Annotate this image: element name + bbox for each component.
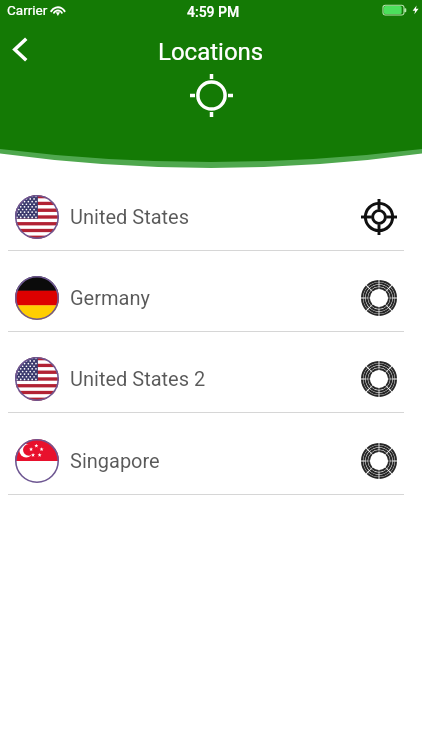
staticText: Germany	[70, 286, 150, 309]
staticText: Locations	[158, 38, 264, 66]
staticText: Carrier	[7, 2, 48, 18]
button[interactable]: Singapore	[0, 414, 422, 495]
button[interactable]: Selected location	[356, 194, 402, 240]
button[interactable]: Germany	[0, 251, 422, 332]
button[interactable]: Connecting	[356, 275, 402, 321]
staticText: United States 2	[70, 367, 206, 390]
staticText: 4:59 PM	[187, 4, 240, 20]
staticText: United States	[70, 205, 190, 228]
button[interactable]: Connecting	[356, 356, 402, 402]
button[interactable]: Back	[0, 27, 42, 71]
button[interactable]: United States 2	[0, 332, 422, 413]
button[interactable]: United States	[0, 170, 422, 251]
button[interactable]: Locate me	[189, 73, 233, 117]
button[interactable]: Connecting	[356, 438, 402, 484]
staticText: Singapore	[70, 449, 160, 472]
